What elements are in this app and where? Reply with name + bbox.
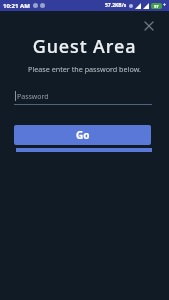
staticText: 57.2KB/s [105, 2, 127, 9]
staticText: Please enter the password below. [0, 64, 169, 74]
staticText: 10:21 AM [3, 2, 30, 10]
staticText: + [163, 2, 166, 9]
staticText: Go [76, 128, 90, 142]
staticText: Password [17, 92, 49, 102]
staticText: Guest Area [0, 34, 169, 59]
button[interactable]: Password [14, 88, 152, 106]
staticText: 97 [154, 4, 159, 9]
button[interactable] [141, 18, 157, 34]
button[interactable]: Go [14, 125, 151, 145]
